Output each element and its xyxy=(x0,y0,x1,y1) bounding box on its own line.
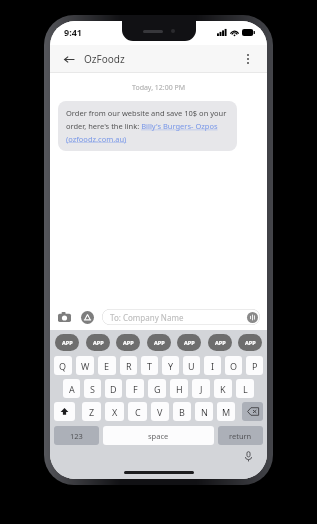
staticText: 123 xyxy=(70,431,83,441)
button[interactable]: S xyxy=(84,379,101,398)
staticText: Today, 12:00 PM xyxy=(132,83,186,93)
button[interactable]: R xyxy=(120,356,137,375)
button[interactable]: App Store xyxy=(80,310,95,325)
button[interactable]: More options xyxy=(240,51,256,67)
staticText: Q xyxy=(59,360,67,372)
staticText: APP xyxy=(93,339,104,346)
staticText: return xyxy=(229,431,252,441)
staticText: G xyxy=(154,383,161,395)
button[interactable]: Shift xyxy=(54,402,75,421)
button[interactable]: return xyxy=(218,426,263,445)
staticText: APP xyxy=(184,339,195,346)
button[interactable]: APP xyxy=(147,334,171,351)
staticText: APP xyxy=(245,339,256,346)
staticText: APP xyxy=(154,339,165,346)
staticText: To: Company Name xyxy=(110,312,184,323)
staticText: Order from our website and save 10$ on y… xyxy=(66,108,229,144)
button[interactable]: N xyxy=(195,402,213,421)
staticText: Y xyxy=(168,360,174,372)
button[interactable]: V xyxy=(151,402,169,421)
button[interactable]: C xyxy=(128,402,147,421)
button[interactable]: A xyxy=(63,379,80,398)
button[interactable]: Order from our website and save 10$ on y… xyxy=(58,101,237,151)
staticText: A xyxy=(69,383,75,395)
staticText: J xyxy=(200,383,203,395)
button[interactable]: T xyxy=(141,356,158,375)
button[interactable]: APP xyxy=(177,334,201,351)
staticText: space xyxy=(148,431,169,441)
button[interactable]: H xyxy=(170,379,188,398)
button[interactable]: Dictate xyxy=(241,449,255,463)
button[interactable]: U xyxy=(183,356,200,375)
staticText: APP xyxy=(62,339,73,346)
button[interactable]: Backspace xyxy=(242,402,263,421)
button[interactable]: W xyxy=(76,356,94,375)
button[interactable]: APP xyxy=(55,334,79,351)
button[interactable]: To: Company Name xyxy=(102,309,260,325)
staticText: L xyxy=(243,383,248,395)
staticText: F xyxy=(133,383,138,395)
staticText: P xyxy=(252,360,258,372)
staticText: I xyxy=(211,360,215,372)
button[interactable]: E xyxy=(98,356,116,375)
button[interactable]: O xyxy=(225,356,242,375)
button[interactable]: L xyxy=(236,379,254,398)
button[interactable]: APP xyxy=(208,334,232,351)
button[interactable]: Y xyxy=(162,356,179,375)
button[interactable]: Z xyxy=(82,402,101,421)
staticText: H xyxy=(176,383,183,395)
button[interactable]: APP xyxy=(116,334,140,351)
staticText: M xyxy=(222,406,231,418)
staticText: R xyxy=(126,360,132,372)
button[interactable]: APP xyxy=(86,334,110,351)
button[interactable]: Back xyxy=(61,51,77,67)
staticText: U xyxy=(188,360,195,372)
button[interactable]: K xyxy=(214,379,232,398)
staticText: APP xyxy=(123,339,134,346)
staticText: OzFoodz xyxy=(84,52,125,66)
button[interactable]: J xyxy=(192,379,210,398)
staticText: X xyxy=(112,406,118,418)
button[interactable]: Camera xyxy=(57,310,72,325)
staticText: O xyxy=(230,360,238,372)
button[interactable]: G xyxy=(148,379,166,398)
button[interactable]: X xyxy=(105,402,124,421)
button[interactable]: APP xyxy=(238,334,262,351)
button[interactable]: 123 xyxy=(54,426,99,445)
staticText: B xyxy=(179,406,185,418)
staticText: C xyxy=(135,406,141,418)
button[interactable]: I xyxy=(204,356,221,375)
staticText: T xyxy=(147,360,153,372)
staticText: APP xyxy=(215,339,226,346)
staticText: N xyxy=(201,406,208,418)
staticText: V xyxy=(157,406,163,418)
button[interactable]: Q xyxy=(54,356,72,375)
staticText: D xyxy=(110,383,117,395)
button[interactable]: P xyxy=(246,356,263,375)
button[interactable]: space xyxy=(103,426,214,445)
button[interactable]: M xyxy=(217,402,235,421)
staticText: K xyxy=(220,383,226,395)
button[interactable]: D xyxy=(105,379,122,398)
staticText: S xyxy=(90,383,95,395)
staticText: Z xyxy=(89,406,95,418)
button[interactable]: B xyxy=(173,402,191,421)
staticText: 9:41 xyxy=(64,26,82,38)
staticText: E xyxy=(104,360,110,372)
staticText: W xyxy=(81,360,90,372)
button[interactable]: F xyxy=(126,379,144,398)
